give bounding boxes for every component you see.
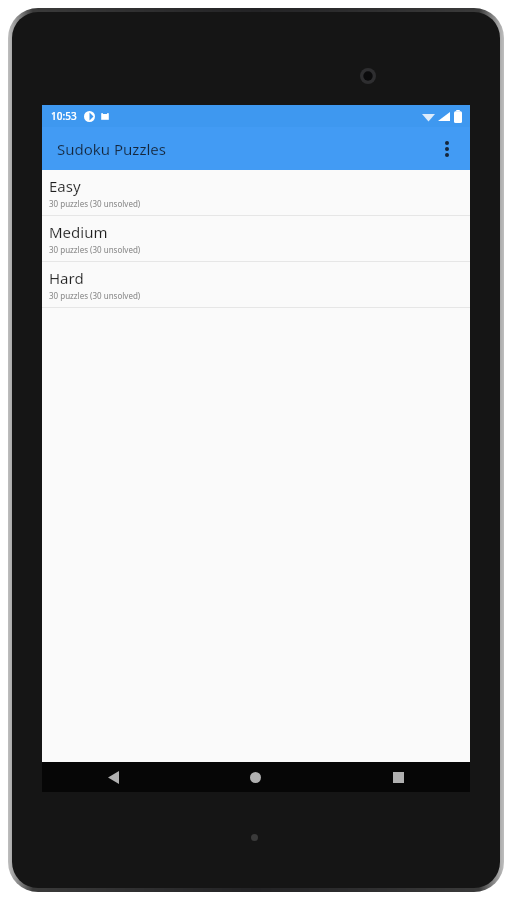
staticText: 30 puzzles (30 unsolved) — [49, 198, 141, 209]
staticText: 30 puzzles (30 unsolved) — [49, 290, 141, 301]
staticText: Hard — [49, 268, 84, 288]
button[interactable]: Easy — [42, 170, 470, 216]
staticText: Easy — [49, 176, 81, 196]
button[interactable]: Recent apps — [327, 762, 470, 792]
button[interactable]: More options — [432, 134, 462, 164]
staticText: Sudoku Puzzles — [57, 139, 166, 159]
button[interactable]: Medium — [42, 216, 470, 262]
button[interactable]: Hard — [42, 262, 470, 308]
staticText: 10:53 — [51, 109, 77, 123]
staticText: Medium — [49, 222, 108, 242]
button[interactable]: Home — [184, 762, 327, 792]
button[interactable]: Back — [42, 762, 184, 792]
staticText: 30 puzzles (30 unsolved) — [49, 244, 141, 255]
